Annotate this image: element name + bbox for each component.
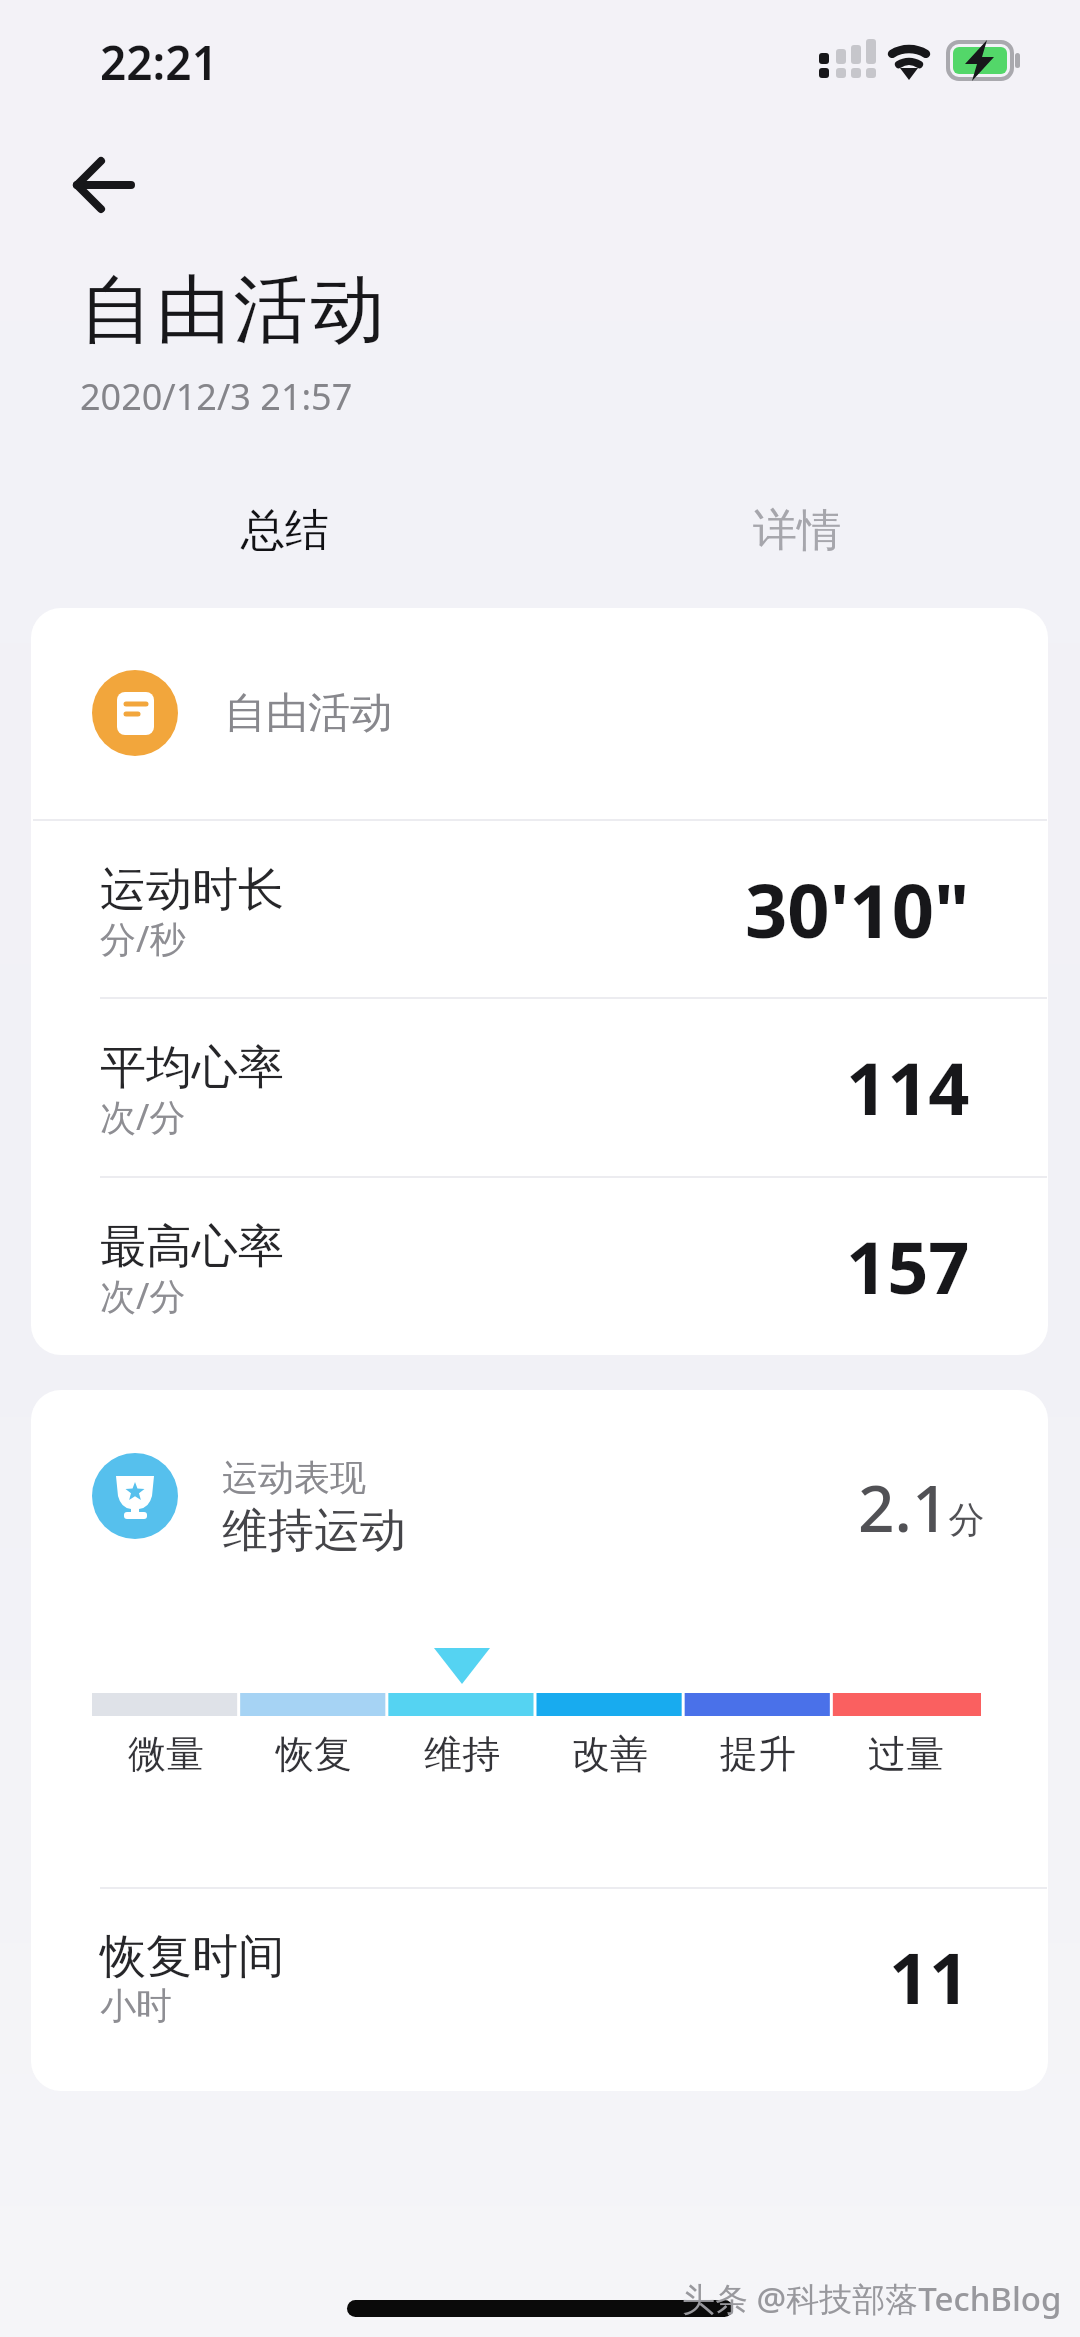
staticText: 自由活动 <box>224 687 392 740</box>
staticText: 微量 <box>128 1730 204 1778</box>
staticText: 分/秒 <box>100 914 186 963</box>
staticText: 小时 <box>100 1983 172 2028</box>
staticText: 过量 <box>868 1730 944 1778</box>
staticText: 自由活动 <box>78 264 386 357</box>
staticText: 2.1分 <box>858 1464 985 1551</box>
staticText: 次/分 <box>100 1271 186 1320</box>
staticText: 最高心率 <box>100 1218 284 1276</box>
button[interactable]: 总结 <box>135 480 435 580</box>
staticText: 次/分 <box>100 1092 186 1141</box>
button[interactable] <box>55 143 165 227</box>
staticText: 157 <box>846 1217 970 1315</box>
staticText: 恢复时间 <box>100 1928 284 1986</box>
staticText: 维持运动 <box>222 1502 406 1560</box>
staticText: 详情 <box>753 503 841 558</box>
staticText: 运动表现 <box>222 1455 366 1500</box>
staticText: 30'10" <box>745 859 970 959</box>
staticText: 维持 <box>424 1730 500 1778</box>
staticText: 总结 <box>241 503 329 558</box>
staticText: 2020/12/3 21:57 <box>80 372 353 421</box>
staticText: 平均心率 <box>100 1039 284 1097</box>
staticText: 头条 @科技部落TechBlog <box>682 2276 1062 2321</box>
staticText: 提升 <box>720 1730 796 1778</box>
staticText: 恢复 <box>276 1730 352 1778</box>
staticText: 改善 <box>572 1730 648 1778</box>
staticText: 运动时长 <box>100 861 284 919</box>
staticText: 114 <box>846 1038 970 1136</box>
button[interactable]: 详情 <box>647 480 947 580</box>
staticText: 22:21 <box>100 31 218 94</box>
staticText: 11 <box>889 1929 970 2024</box>
